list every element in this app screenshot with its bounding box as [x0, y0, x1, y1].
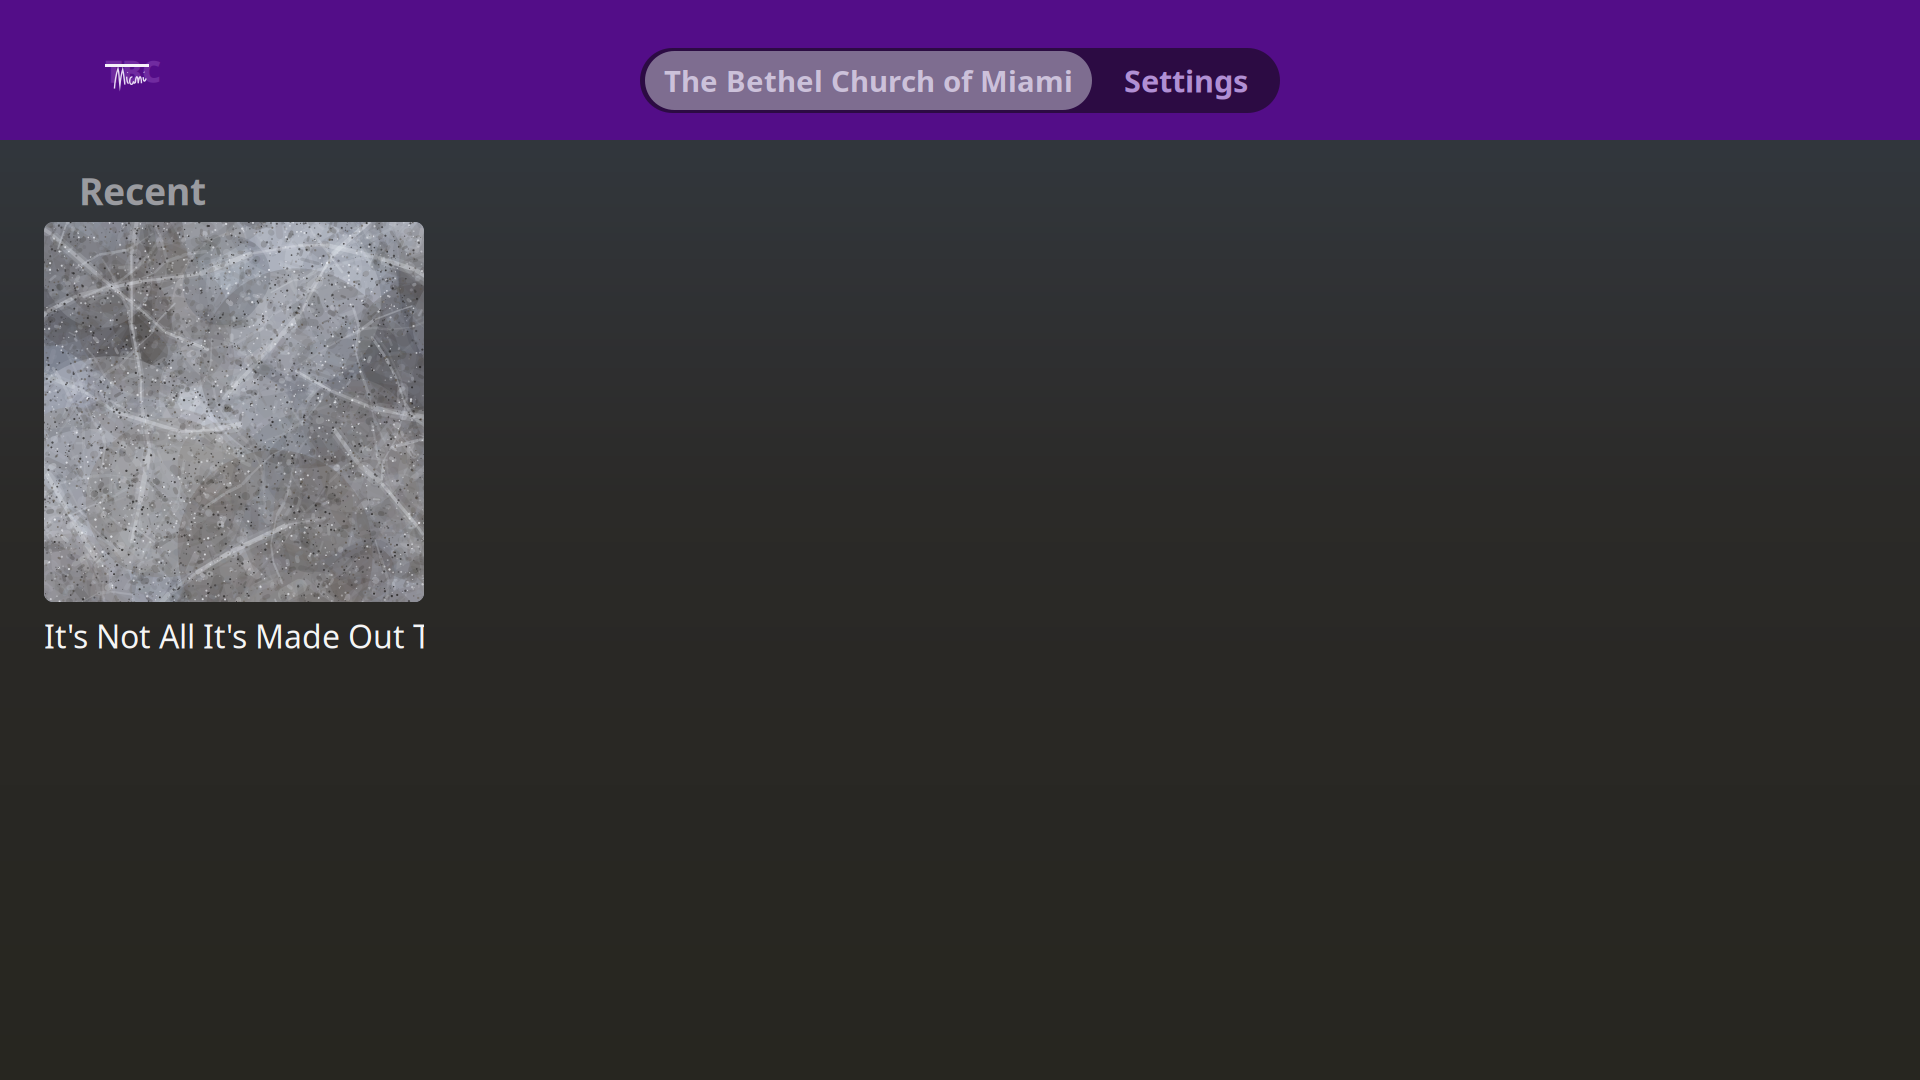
button[interactable]: The Bethel Church of Miami	[645, 51, 1092, 110]
staticText: It's Not All It's Made Out To	[44, 615, 448, 657]
button[interactable]: The Bethel Church of Miami — Home	[104, 46, 168, 94]
button[interactable]: It's Not All It's Made Out To	[44, 222, 424, 662]
button[interactable]: Settings	[1092, 51, 1280, 110]
staticText: Recent	[79, 166, 206, 216]
staticText: Settings	[1124, 60, 1248, 101]
staticText: TBC	[105, 52, 161, 91]
staticText: The Bethel Church of Miami	[664, 61, 1073, 100]
